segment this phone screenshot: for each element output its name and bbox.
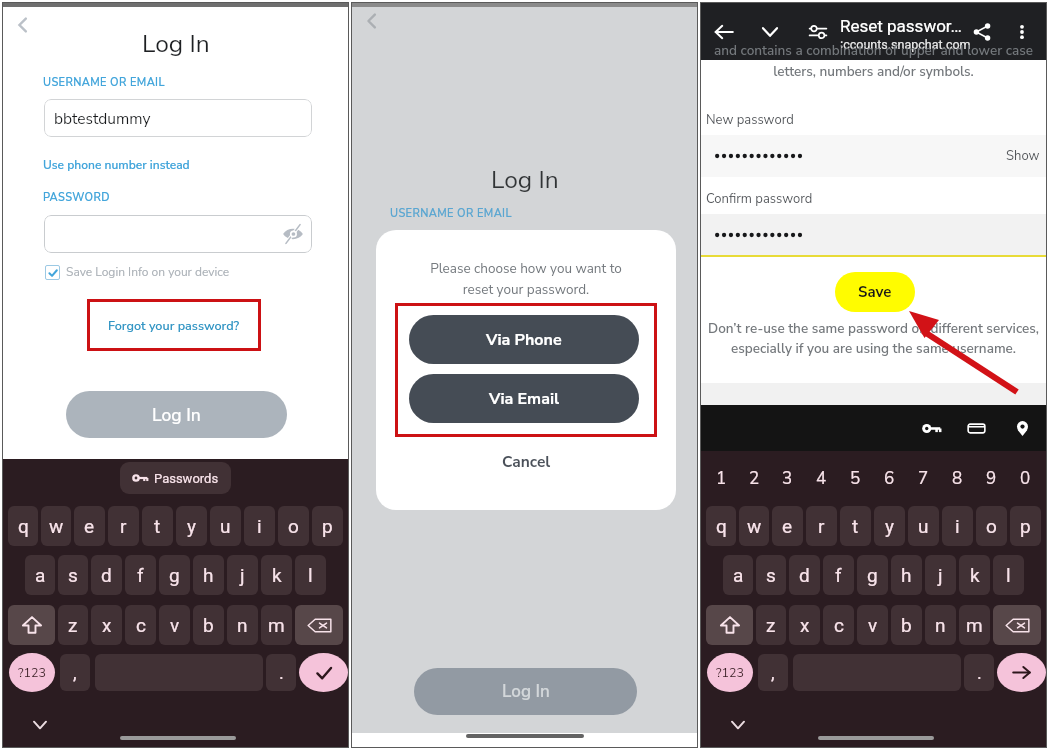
button[interactable]: Backspace xyxy=(295,605,343,645)
button[interactable]: u xyxy=(210,506,241,546)
button[interactable]: p xyxy=(312,506,343,546)
button[interactable]: a xyxy=(25,555,55,595)
button[interactable]: l xyxy=(295,555,326,595)
button[interactable]: Addresses xyxy=(1007,413,1037,443)
button[interactable]: t xyxy=(142,506,173,546)
button[interactable]: Hide keyboard xyxy=(726,713,750,737)
button[interactable]: k xyxy=(261,555,292,595)
button[interactable]: e xyxy=(74,506,105,546)
button[interactable]: Via Email xyxy=(409,374,639,423)
button[interactable]: Cancel xyxy=(482,447,571,476)
button[interactable]: . xyxy=(266,654,296,691)
button[interactable]: Log In xyxy=(66,391,287,438)
button[interactable]: s xyxy=(756,555,786,595)
button[interactable]: 7 xyxy=(908,464,939,492)
button[interactable]: q xyxy=(706,506,736,546)
button[interactable]: v xyxy=(857,605,888,645)
button[interactable]: Forgot your password? xyxy=(87,299,261,351)
button[interactable]: 2 xyxy=(739,464,769,492)
button[interactable]: . xyxy=(964,654,994,691)
button[interactable]: Close tab xyxy=(756,18,784,46)
button[interactable]: z xyxy=(756,605,786,645)
button[interactable]: Back xyxy=(710,18,738,46)
button[interactable]: Save xyxy=(835,272,915,312)
button[interactable]: j xyxy=(227,555,258,595)
button[interactable]: i xyxy=(942,506,973,546)
button[interactable]: y xyxy=(176,506,207,546)
button[interactable]: Show xyxy=(701,135,1046,177)
button[interactable]: Shift xyxy=(706,605,753,645)
button[interactable]: t xyxy=(840,506,871,546)
button[interactable]: f xyxy=(823,555,854,595)
button[interactable]: r xyxy=(806,506,837,546)
button[interactable]: w xyxy=(41,506,71,546)
button[interactable] xyxy=(701,214,1046,255)
button[interactable]: f xyxy=(125,555,156,595)
button[interactable]: 4 xyxy=(806,464,837,492)
button[interactable]: Via Phone xyxy=(409,315,639,364)
button[interactable]: Save Login Info on your device xyxy=(45,264,230,280)
button[interactable]: u xyxy=(908,506,939,546)
button[interactable]: x xyxy=(789,605,820,645)
button[interactable]: j xyxy=(925,555,956,595)
button[interactable]: s xyxy=(58,555,88,595)
button[interactable]: v xyxy=(159,605,190,645)
button[interactable]: Backspace xyxy=(993,605,1041,645)
button[interactable]: Log In xyxy=(414,668,637,715)
button[interactable]: More options xyxy=(1008,18,1036,46)
button[interactable]: g xyxy=(159,555,190,595)
button[interactable]: w xyxy=(739,506,769,546)
button[interactable]: m xyxy=(959,605,990,645)
button[interactable]: b xyxy=(891,605,922,645)
button[interactable]: 0 xyxy=(1010,464,1041,492)
button[interactable]: i xyxy=(244,506,275,546)
button[interactable]: Passwords xyxy=(916,413,946,443)
button[interactable]: Back xyxy=(8,11,36,39)
button[interactable]: r xyxy=(108,506,139,546)
button[interactable]: , xyxy=(60,654,90,691)
button[interactable]: e xyxy=(772,506,803,546)
button[interactable]: 3 xyxy=(772,464,803,492)
button[interactable]: 1 xyxy=(706,464,736,492)
button[interactable]: bbtestdummy xyxy=(44,99,312,137)
button[interactable]: p xyxy=(1010,506,1041,546)
button[interactable]: n xyxy=(227,605,258,645)
button[interactable]: 9 xyxy=(976,464,1007,492)
button[interactable]: l xyxy=(993,555,1024,595)
button[interactable]: Back xyxy=(357,7,385,35)
button[interactable]: x xyxy=(91,605,122,645)
button[interactable]: a xyxy=(723,555,753,595)
button[interactable]: o xyxy=(976,506,1007,546)
button[interactable]: Site settings xyxy=(804,18,832,46)
button[interactable]: m xyxy=(261,605,292,645)
button[interactable]: Share xyxy=(968,18,996,46)
button[interactable]: , xyxy=(758,654,788,691)
button[interactable]: 5 xyxy=(840,464,871,492)
button[interactable]: 6 xyxy=(874,464,905,492)
button[interactable]: z xyxy=(58,605,88,645)
button[interactable]: Shift xyxy=(8,605,55,645)
button[interactable]: g xyxy=(857,555,888,595)
button[interactable]: d xyxy=(789,555,820,595)
button[interactable]: Show password xyxy=(44,215,312,253)
button[interactable]: Go xyxy=(997,653,1046,692)
button[interactable]: n xyxy=(925,605,956,645)
button[interactable]: c xyxy=(125,605,156,645)
button[interactable]: o xyxy=(278,506,309,546)
button[interactable]: Payment methods xyxy=(961,413,991,443)
button[interactable]: d xyxy=(91,555,122,595)
button[interactable]: Hide keyboard xyxy=(28,713,52,737)
button[interactable]: y xyxy=(874,506,905,546)
button[interactable]: ?123 xyxy=(707,653,753,692)
button[interactable]: q xyxy=(8,506,38,546)
button[interactable]: Done xyxy=(299,653,348,692)
button[interactable]: Passwords xyxy=(120,462,231,494)
button[interactable]: ?123 xyxy=(9,653,55,692)
button[interactable]: h xyxy=(193,555,224,595)
button[interactable]: b xyxy=(193,605,224,645)
button[interactable]: k xyxy=(959,555,990,595)
button[interactable]: c xyxy=(823,605,854,645)
button[interactable]: 8 xyxy=(942,464,973,492)
